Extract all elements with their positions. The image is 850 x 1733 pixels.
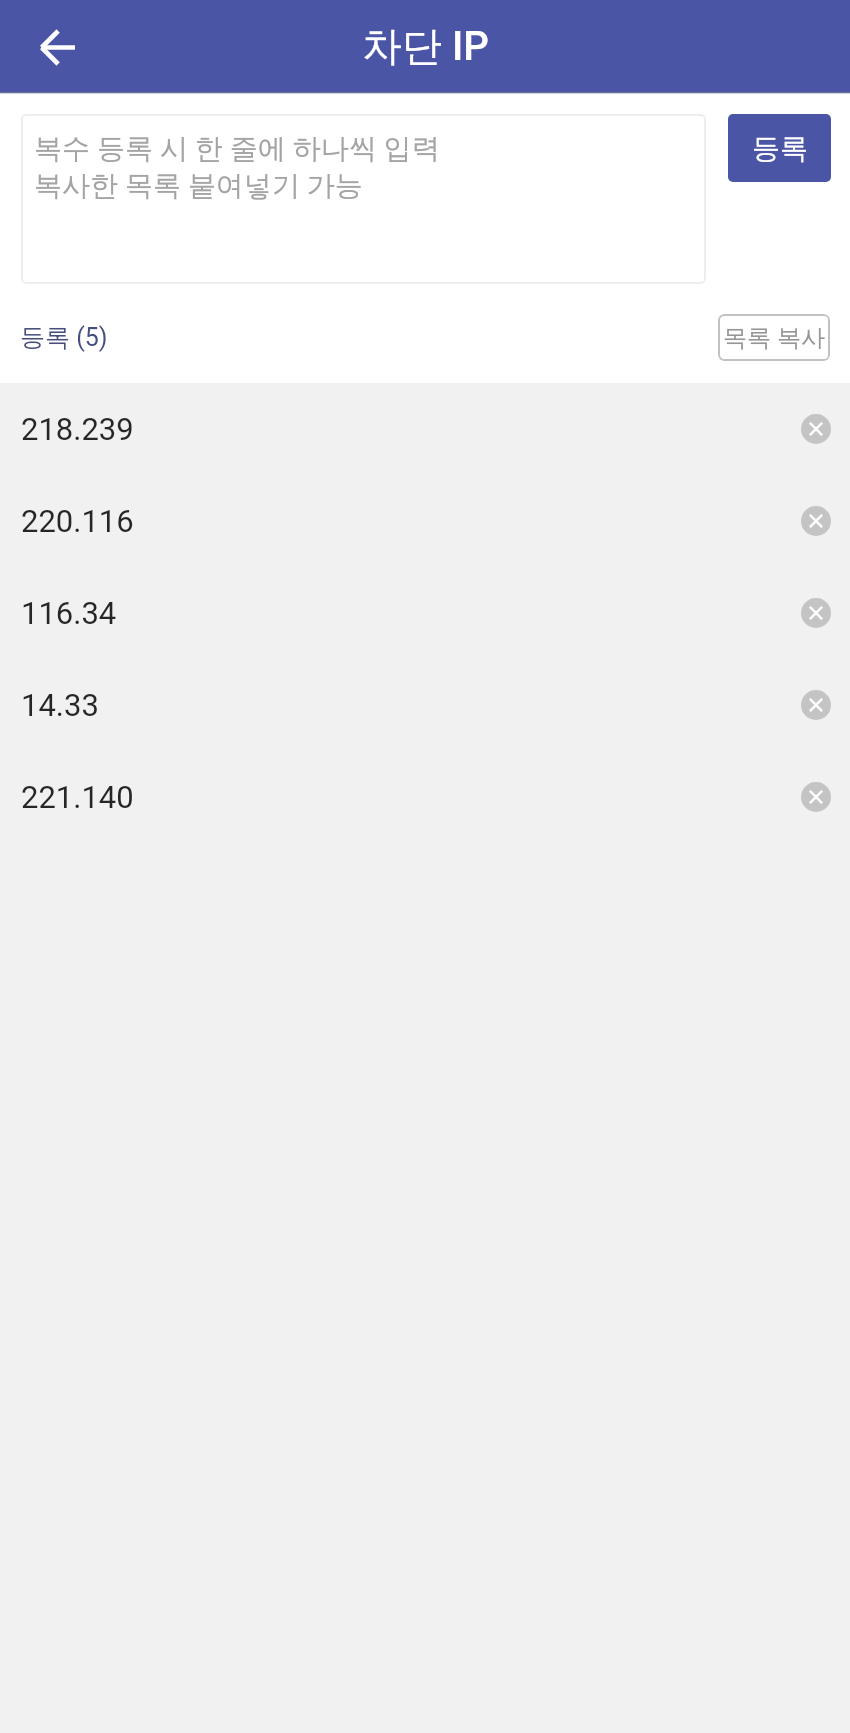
button[interactable]: 220.116 [0,475,850,567]
button[interactable]: Back [18,8,97,87]
button[interactable]: 116.34 [0,567,850,659]
staticText: 등록 (5) [20,322,108,353]
button[interactable]: 목록 복사 [718,314,830,361]
staticText: 218.239 [21,411,134,447]
button[interactable]: Remove 220.116 [788,493,844,549]
staticText: 복수 등록 시 한 줄에 하나씩 입력 복사한 목록 붙여넣기 가능 [34,131,440,203]
button[interactable]: 등록 [728,114,831,182]
staticText: 14.33 [21,687,99,723]
staticText: 221.140 [21,779,134,815]
staticText: 차단 IP [362,21,489,71]
button[interactable]: 복수 등록 시 한 줄에 하나씩 입력 복사한 목록 붙여넣기 가능 [21,114,706,284]
button[interactable]: 14.33 [0,659,850,751]
button[interactable]: 221.140 [0,751,850,843]
staticText: 목록 복사 [723,323,825,353]
button[interactable]: Remove 14.33 [788,677,844,733]
button[interactable]: Remove 116.34 [788,585,844,641]
button[interactable]: 218.239 [0,383,850,475]
button[interactable]: Remove 218.239 [788,401,844,457]
staticText: 등록 [752,131,808,166]
staticText: 220.116 [21,503,134,539]
staticText: 116.34 [21,595,117,631]
button[interactable]: Remove 221.140 [788,769,844,825]
